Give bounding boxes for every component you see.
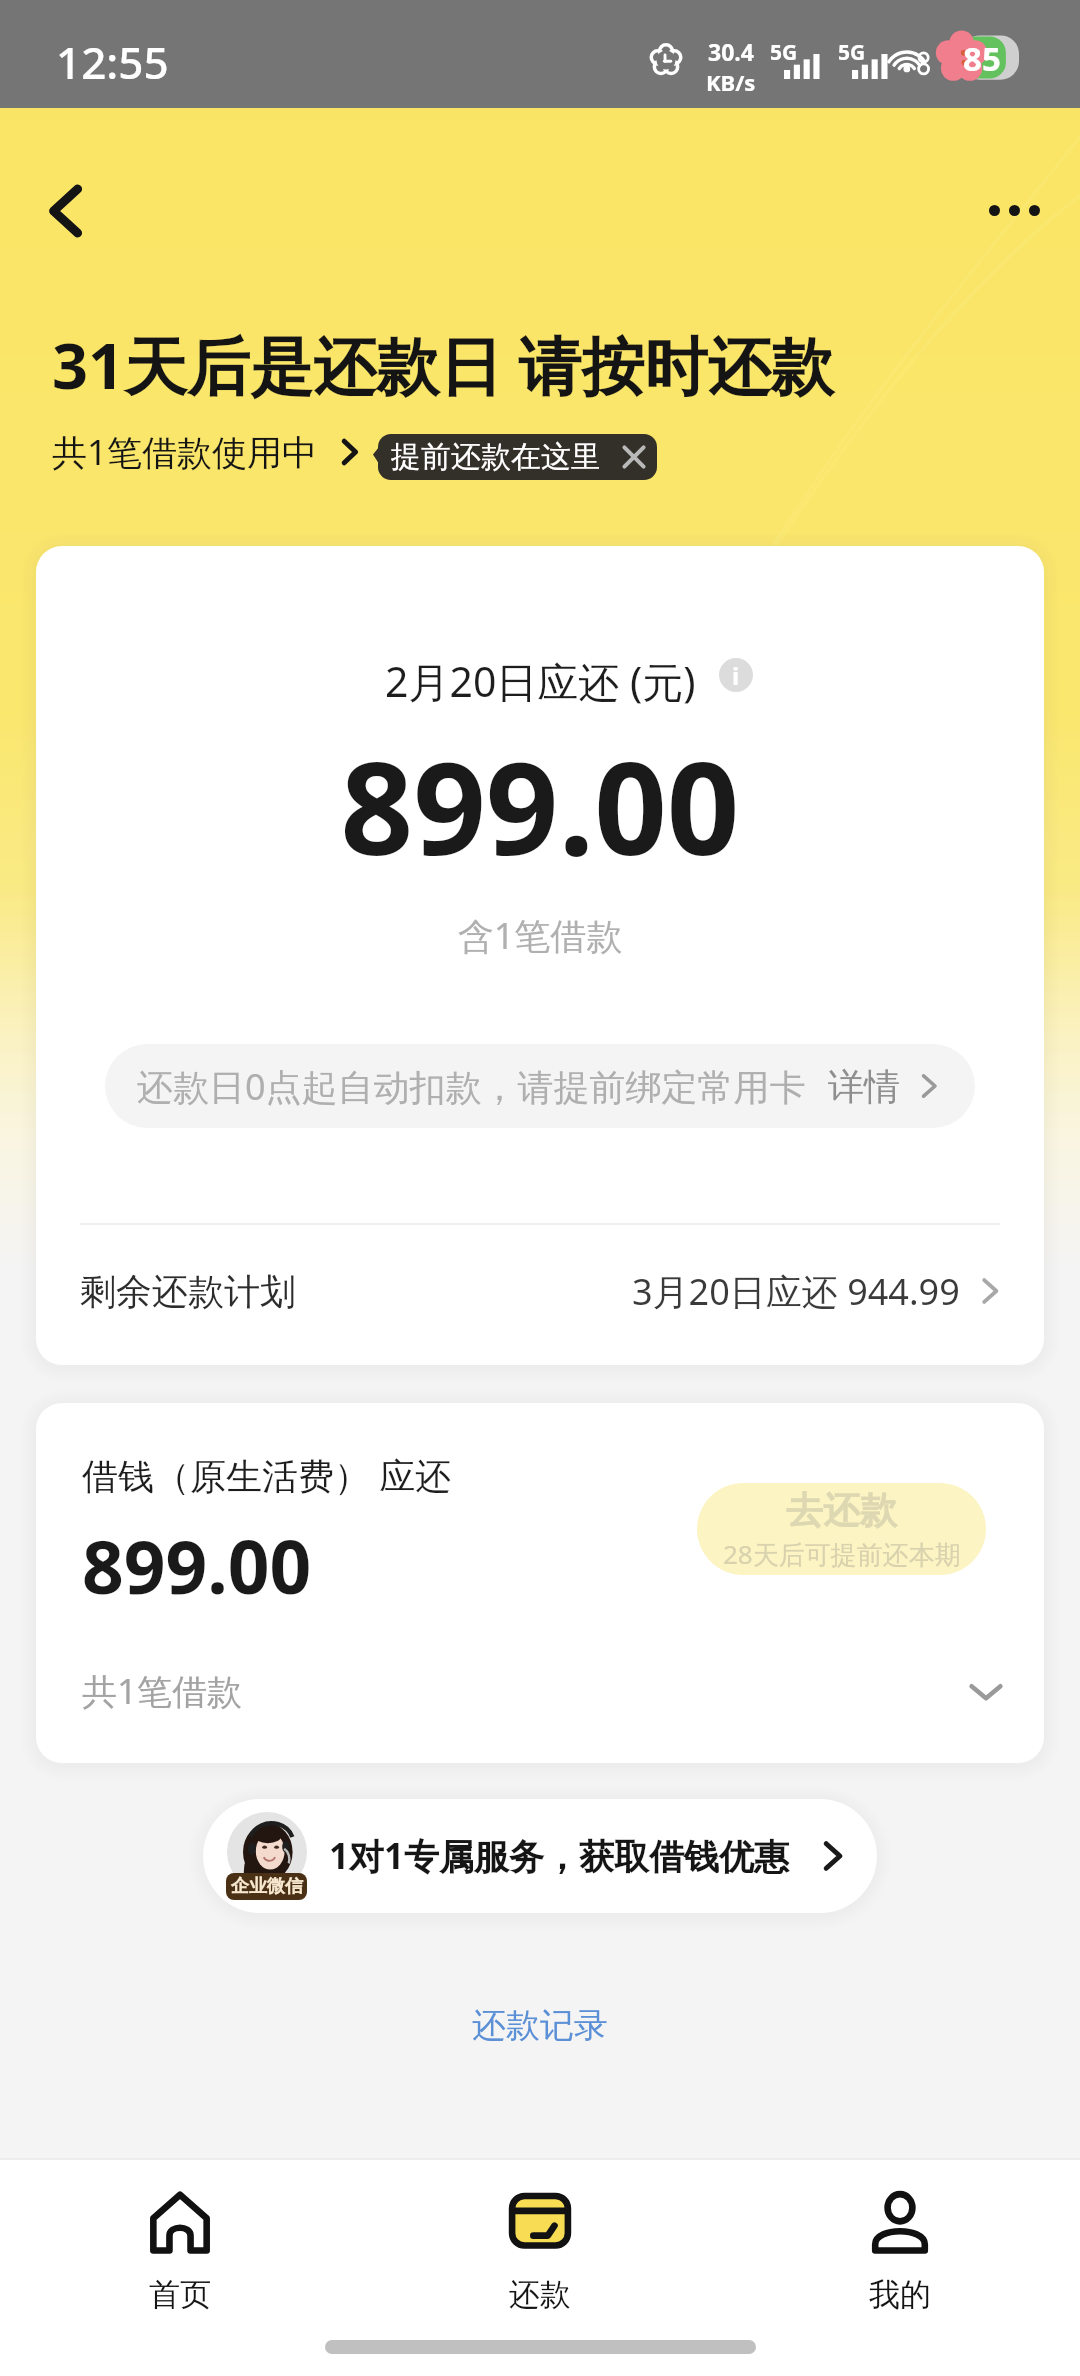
- staticText: 共1笔借款使用中: [52, 428, 318, 476]
- staticText: 5G: [770, 38, 798, 67]
- button[interactable]: 还款记录: [442, 1990, 638, 2061]
- staticText: 1对1专属服务，获取借钱优惠: [329, 1832, 790, 1880]
- button[interactable]: 企业微信: [203, 1799, 877, 1913]
- staticText: 剩余还款计划: [80, 1269, 296, 1314]
- staticText: 提前还款在这里: [391, 438, 601, 476]
- staticText: 3月20日应还 944.99: [632, 1267, 960, 1316]
- button[interactable]: 首页: [0, 2191, 360, 2314]
- button[interactable]: 还款日0点起自动扣款，请提前绑定常用卡: [105, 1044, 975, 1128]
- button[interactable]: 共1笔借款: [36, 1637, 1044, 1745]
- button[interactable]: 剩余还款计划: [36, 1238, 1044, 1344]
- staticText: i: [732, 659, 740, 692]
- button[interactable]: 我的: [720, 2191, 1080, 2314]
- staticText: 我的: [869, 2275, 931, 2314]
- staticText: 85: [963, 36, 1001, 81]
- button[interactable]: 提前还款在这里: [378, 434, 657, 480]
- staticText: 详情: [828, 1064, 900, 1109]
- staticText: 还款日0点起自动扣款，请提前绑定常用卡: [137, 1062, 806, 1111]
- staticText: 含1笔借款: [36, 911, 1044, 960]
- staticText: 还款记录: [472, 2004, 608, 2047]
- staticText: 5G: [838, 38, 866, 67]
- button[interactable]: Back: [23, 169, 107, 253]
- other: Close: [622, 445, 646, 469]
- staticText: 共1笔借款: [82, 1667, 243, 1715]
- staticText: 首页: [149, 2275, 211, 2314]
- staticText: 2月20日应还 (元): [385, 653, 696, 709]
- staticText: KB/s: [706, 67, 756, 97]
- staticText: 去还款: [786, 1487, 897, 1534]
- staticText: 还款: [509, 2275, 571, 2314]
- button[interactable]: 共1笔借款使用中: [52, 424, 364, 480]
- staticText: 借钱（原生活费） 应还: [82, 1451, 452, 1500]
- button[interactable]: 还款: [360, 2191, 720, 2314]
- staticText: 899.00: [82, 1516, 312, 1615]
- button[interactable]: More options: [972, 168, 1056, 252]
- staticText: 12:55: [56, 32, 169, 92]
- staticText: 28天后可提前还本期: [723, 1536, 961, 1572]
- staticText: 企业微信: [231, 1875, 303, 1898]
- staticText: 31天后是还款日 请按时还款: [52, 322, 834, 408]
- staticText: 899.00: [36, 719, 1044, 892]
- button[interactable]: Info: [719, 658, 753, 692]
- staticText: 30.4: [708, 36, 754, 67]
- button[interactable]: 去还款: [697, 1483, 986, 1575]
